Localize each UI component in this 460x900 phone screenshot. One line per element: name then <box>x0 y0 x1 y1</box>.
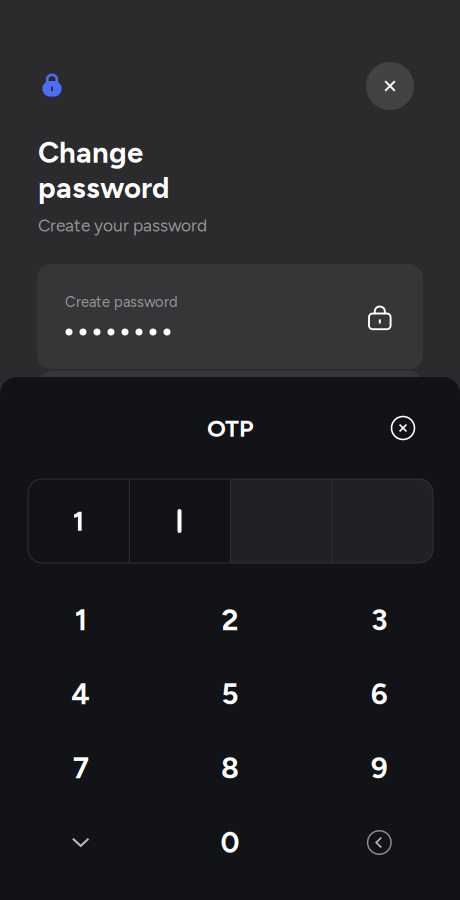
staticText: 3 <box>371 602 387 638</box>
staticText: Create password <box>65 293 178 311</box>
button[interactable]: Close <box>366 62 414 110</box>
staticText: 2 <box>221 602 238 638</box>
button[interactable]: 6 <box>305 657 454 731</box>
staticText: Change password <box>38 135 169 205</box>
button[interactable]: 7 <box>6 731 155 805</box>
button[interactable]: 3 <box>305 583 454 657</box>
staticText: 0 <box>220 825 239 860</box>
staticText: OTP <box>207 414 253 443</box>
staticText: 4 <box>71 676 90 712</box>
button[interactable]: Dismiss OTP <box>386 411 420 445</box>
button[interactable]: 2 <box>155 583 305 657</box>
button[interactable]: Delete <box>305 805 454 880</box>
button[interactable]: 1 <box>6 583 155 657</box>
staticText: 9 <box>371 750 388 786</box>
staticText: 1 <box>75 602 87 638</box>
button[interactable]: 5 <box>155 657 305 731</box>
staticText: 5 <box>221 676 238 712</box>
button[interactable]: 0 <box>155 805 305 880</box>
staticText: 7 <box>73 750 89 786</box>
button[interactable]: 9 <box>305 731 454 805</box>
staticText: Create your password <box>38 215 207 236</box>
staticText: 1 <box>72 504 84 538</box>
button[interactable]: 4 <box>6 657 155 731</box>
staticText: 6 <box>371 676 388 712</box>
button[interactable]: 8 <box>155 731 305 805</box>
button[interactable]: Hide keypad <box>6 805 155 880</box>
staticText: 8 <box>221 750 239 786</box>
